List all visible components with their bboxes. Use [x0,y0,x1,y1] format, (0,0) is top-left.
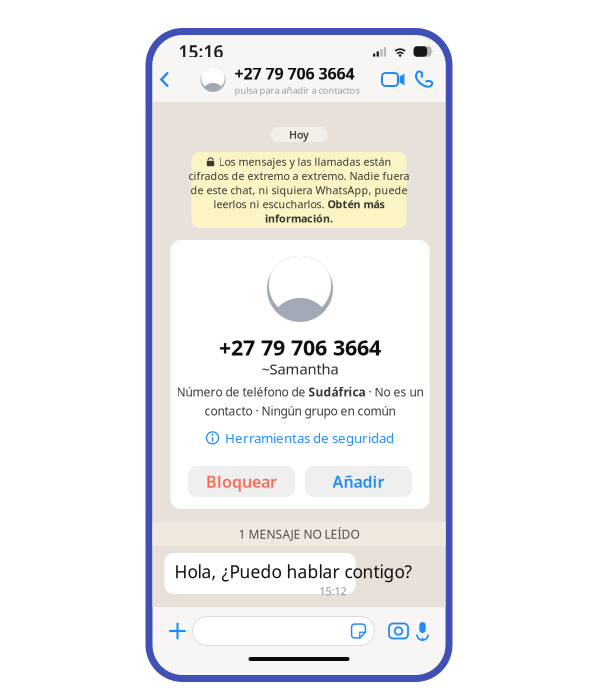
staticText: Hola, ¿Puedo hablar contigo? [174,560,412,583]
button[interactable]: Back [159,57,181,102]
staticText: Obtén más [327,197,384,211]
staticText: ~Samantha [261,359,338,378]
staticText: +27 79 706 3664 [234,63,354,84]
staticText: 15:12 [319,584,346,598]
staticText: Añadir [332,471,384,492]
button[interactable]: Video call [376,57,410,102]
button[interactable]: Attach [162,611,192,651]
staticText: Hoy [289,127,309,142]
button[interactable] [192,616,374,645]
staticText: leerlos ni escucharlos. [213,197,327,211]
button[interactable]: Bloquear [188,466,295,497]
staticText: de este chat, ni siquiera WhatsApp, pued… [190,183,407,197]
staticText: contacto · Ningún grupo en común [204,403,395,419]
staticText: información. [265,211,333,225]
staticText: 1 MENSAJE NO LEÍDO [238,526,359,542]
staticText: pulsa para añadir a contactos [234,84,359,96]
button[interactable]: Voice call [410,57,438,102]
staticText: · No es un [365,384,423,400]
staticText: 15:16 [178,40,223,63]
staticText: +27 79 706 3664 [219,333,381,361]
staticText: Herramientas de seguridad [225,429,394,447]
button[interactable]: +27 79 706 3664 [200,57,359,102]
staticText: cifrados de extremo a extremo. Nadie fue… [188,169,409,183]
button[interactable]: Añadir [305,466,412,497]
staticText: Sudáfrica [308,384,365,400]
button[interactable]: Herramientas de seguridad [196,425,404,451]
staticText: Los mensajes y las llamadas están [218,155,391,169]
staticText: Número de teléfono de [176,384,308,400]
button[interactable]: Camera [385,611,411,651]
button[interactable]: Voice message [411,611,433,651]
staticText: Bloquear [206,471,277,492]
